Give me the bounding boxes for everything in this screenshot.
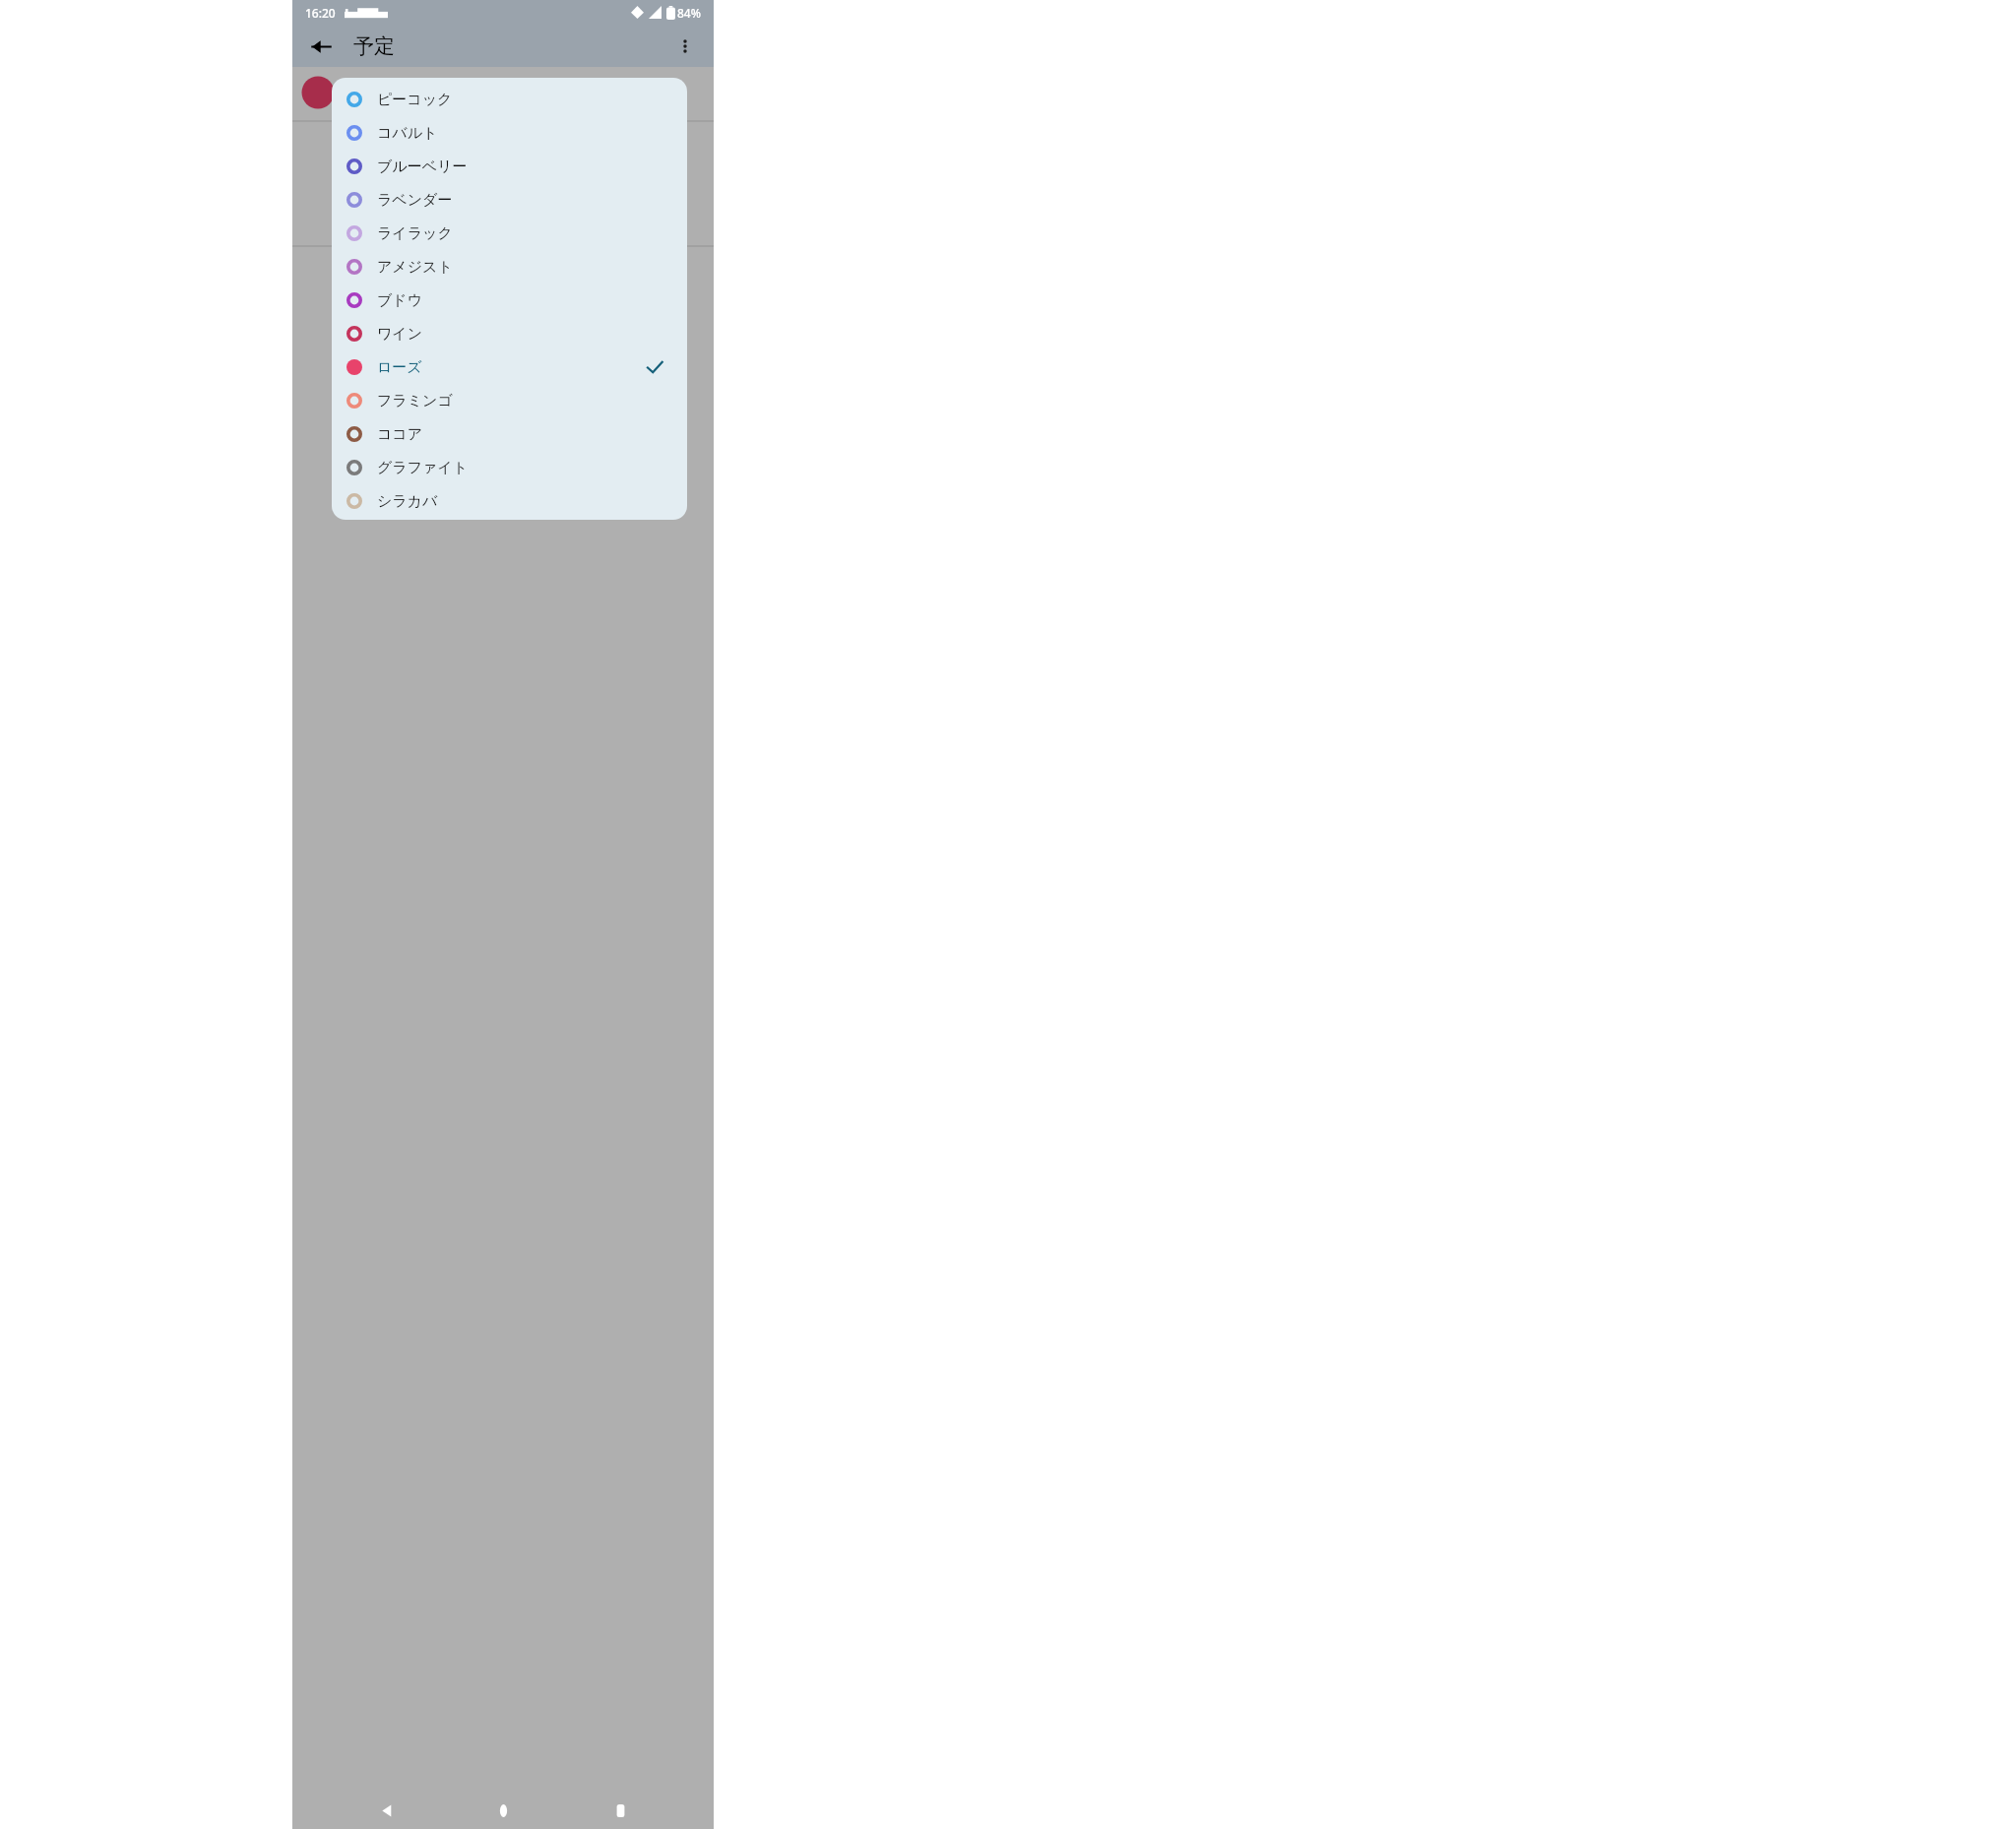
button[interactable]: ワイン	[332, 317, 687, 350]
button[interactable]: グラファイト	[332, 451, 687, 484]
staticText: ワイン	[377, 325, 423, 344]
button[interactable]: ローズ	[332, 350, 687, 384]
staticText: ブルーベリー	[377, 158, 468, 176]
button[interactable]: Back	[362, 1792, 409, 1829]
button[interactable]: シラカバ	[332, 484, 687, 518]
button[interactable]: フラミンゴ	[332, 384, 687, 417]
button[interactable]: ライラック	[332, 217, 687, 250]
button[interactable]: アメジスト	[332, 250, 687, 284]
staticText: フラミンゴ	[377, 392, 453, 410]
staticText: アメジスト	[377, 258, 453, 277]
staticText: ピーコック	[377, 91, 453, 109]
staticText: グラファイト	[377, 459, 469, 477]
button[interactable]: Home	[479, 1792, 527, 1829]
button[interactable]: ブルーベリー	[332, 150, 687, 183]
staticText: ローズ	[377, 358, 422, 377]
staticText: ブドウ	[377, 291, 423, 310]
button[interactable]: ピーコック	[332, 83, 687, 116]
staticText: 16:20	[305, 5, 336, 21]
staticText: ラベンダー	[377, 191, 453, 210]
button[interactable]: Back	[301, 27, 341, 66]
button[interactable]: ブドウ	[332, 284, 687, 317]
staticText: シラカバ	[377, 492, 438, 511]
button[interactable]: Recent apps	[597, 1792, 644, 1829]
staticText: ライラック	[377, 224, 453, 243]
staticText: ココア	[377, 425, 423, 444]
staticText: コバルト	[377, 124, 438, 143]
button[interactable]: ココア	[332, 417, 687, 451]
staticText: 予定	[353, 33, 395, 59]
button[interactable]: コバルト	[332, 116, 687, 150]
button[interactable]: ラベンダー	[332, 183, 687, 217]
staticText: 84%	[677, 5, 701, 21]
button[interactable]: More options	[665, 27, 705, 66]
